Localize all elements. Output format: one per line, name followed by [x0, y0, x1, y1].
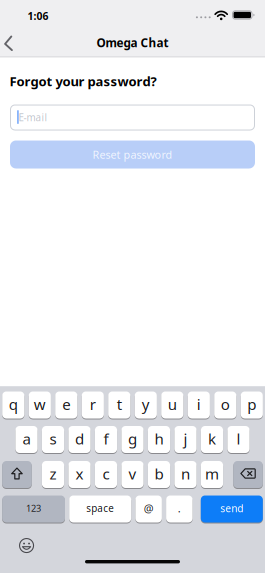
- staticText: c: [102, 463, 109, 484]
- staticText: x: [75, 463, 83, 484]
- button[interactable]: s: [42, 426, 64, 454]
- staticText: u: [168, 394, 177, 414]
- staticText: j: [183, 428, 187, 449]
- button[interactable]: k: [201, 426, 223, 454]
- staticText: m: [205, 463, 219, 484]
- button[interactable]: i: [188, 391, 210, 419]
- staticText: n: [181, 463, 190, 484]
- button[interactable]: z: [42, 461, 64, 489]
- button[interactable]: b: [148, 461, 170, 489]
- button[interactable]: [0, 31, 22, 54]
- staticText: w: [34, 394, 46, 414]
- staticText: E-mail: [19, 111, 48, 124]
- staticText: @: [144, 501, 154, 516]
- staticText: t: [117, 394, 122, 414]
- staticText: y: [142, 394, 150, 414]
- button[interactable]: m: [201, 461, 223, 489]
- staticText: Reset password: [92, 147, 172, 162]
- staticText: d: [75, 428, 84, 449]
- button[interactable]: [2, 461, 32, 489]
- button[interactable]: e: [55, 391, 77, 419]
- staticText: space: [86, 501, 114, 515]
- button[interactable]: .: [166, 495, 193, 523]
- staticText: .: [178, 501, 181, 516]
- staticText: i: [197, 394, 201, 414]
- staticText: q: [9, 394, 18, 414]
- button[interactable]: send: [201, 495, 263, 523]
- staticText: 123: [26, 502, 41, 514]
- button[interactable]: f: [95, 426, 117, 454]
- staticText: z: [49, 463, 56, 484]
- button[interactable]: u: [161, 391, 183, 419]
- button[interactable]: [233, 461, 263, 489]
- button[interactable]: q: [2, 391, 24, 419]
- button[interactable]: @: [135, 495, 162, 523]
- staticText: o: [221, 394, 230, 414]
- button[interactable]: d: [68, 426, 91, 454]
- button[interactable]: c: [95, 461, 117, 489]
- staticText: send: [220, 501, 243, 515]
- staticText: g: [128, 428, 137, 449]
- button[interactable]: j: [174, 426, 197, 454]
- button[interactable]: o: [214, 391, 236, 419]
- button[interactable]: p: [241, 391, 263, 419]
- button[interactable]: h: [148, 426, 170, 454]
- staticText: a: [22, 428, 30, 449]
- button[interactable]: Reset password: [10, 140, 255, 168]
- staticText: f: [103, 428, 108, 449]
- staticText: s: [49, 428, 56, 449]
- staticText: e: [62, 394, 70, 414]
- button[interactable]: E-mail: [10, 104, 255, 130]
- button[interactable]: space: [69, 495, 131, 523]
- button[interactable]: a: [15, 426, 38, 454]
- staticText: h: [154, 428, 163, 449]
- staticText: Forgot your password?: [9, 72, 156, 90]
- button[interactable]: [19, 538, 34, 553]
- button[interactable]: g: [121, 426, 144, 454]
- button[interactable]: r: [82, 391, 104, 419]
- staticText: k: [208, 428, 216, 449]
- staticText: v: [128, 463, 136, 484]
- button[interactable]: 123: [2, 495, 65, 523]
- staticText: Omega Chat: [96, 35, 168, 51]
- staticText: p: [247, 394, 256, 414]
- button[interactable]: w: [29, 391, 51, 419]
- button[interactable]: l: [227, 426, 250, 454]
- button[interactable]: t: [108, 391, 130, 419]
- button[interactable]: x: [68, 461, 91, 489]
- button[interactable]: v: [121, 461, 144, 489]
- staticText: 1:06: [27, 9, 48, 23]
- staticText: b: [154, 463, 163, 484]
- staticText: l: [236, 428, 240, 449]
- staticText: r: [90, 394, 96, 414]
- button[interactable]: y: [135, 391, 157, 419]
- button[interactable]: n: [174, 461, 197, 489]
